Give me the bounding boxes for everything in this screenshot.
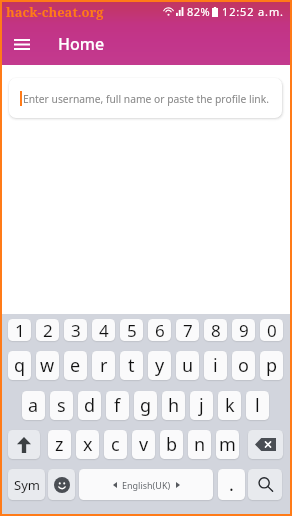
button[interactable]: 3 bbox=[64, 319, 87, 341]
button[interactable]: f bbox=[106, 391, 129, 420]
staticText: k bbox=[225, 393, 235, 418]
staticText: o bbox=[238, 353, 249, 378]
staticText: 8 bbox=[211, 319, 221, 341]
staticText: 9 bbox=[239, 319, 249, 341]
button[interactable]: . bbox=[218, 469, 245, 500]
staticText: 12:52 a.m. bbox=[222, 4, 284, 19]
staticText: Enter username, full name or paste the p… bbox=[23, 92, 269, 106]
staticText: r bbox=[100, 353, 108, 378]
button[interactable]: p bbox=[260, 351, 283, 380]
staticText: s bbox=[57, 393, 66, 418]
staticText: b bbox=[166, 432, 178, 457]
button[interactable]: u bbox=[176, 351, 199, 380]
staticText: hack-cheat.org bbox=[6, 3, 104, 21]
button[interactable]: t bbox=[120, 351, 143, 380]
staticText: q bbox=[14, 353, 26, 378]
staticText: Home bbox=[58, 33, 105, 55]
button[interactable]: o bbox=[232, 351, 255, 380]
staticText: m bbox=[219, 432, 236, 457]
button[interactable]: b bbox=[160, 430, 183, 459]
button[interactable]: m bbox=[216, 430, 239, 459]
button[interactable]: l bbox=[246, 391, 269, 420]
button[interactable]: 9 bbox=[232, 319, 255, 341]
button[interactable]: i bbox=[204, 351, 227, 380]
staticText: h bbox=[168, 393, 180, 418]
button[interactable]: 6 bbox=[148, 319, 171, 341]
staticText: l bbox=[255, 393, 260, 418]
staticText: 7 bbox=[183, 319, 193, 341]
button[interactable]: a bbox=[22, 391, 45, 420]
staticText: w bbox=[40, 353, 55, 378]
staticText: 3 bbox=[71, 319, 81, 341]
staticText: a bbox=[28, 393, 39, 418]
button[interactable]: 8 bbox=[204, 319, 227, 341]
staticText: g bbox=[140, 393, 152, 418]
button[interactable]: g bbox=[134, 391, 157, 420]
button[interactable]: Shift bbox=[8, 430, 40, 459]
button[interactable]: Sym bbox=[8, 469, 45, 500]
staticText: 4 bbox=[99, 319, 109, 341]
button[interactable]: c bbox=[104, 430, 127, 459]
staticText: 1 bbox=[15, 319, 25, 341]
staticText: f bbox=[114, 393, 121, 418]
staticText: n bbox=[194, 432, 206, 457]
button[interactable]: s bbox=[50, 391, 73, 420]
staticText: Sym bbox=[14, 476, 40, 494]
staticText: 6 bbox=[155, 319, 165, 341]
button[interactable]: 0 bbox=[260, 319, 283, 341]
staticText: v bbox=[139, 432, 149, 457]
staticText: x bbox=[83, 432, 93, 457]
button[interactable]: q bbox=[8, 351, 31, 380]
button[interactable]: Delete bbox=[248, 430, 283, 459]
button[interactable]: z bbox=[48, 430, 71, 459]
button[interactable]: 5 bbox=[120, 319, 143, 341]
button[interactable]: v bbox=[132, 430, 155, 459]
staticText: z bbox=[55, 432, 64, 457]
staticText: d bbox=[84, 393, 96, 418]
staticText: i bbox=[213, 353, 218, 378]
button[interactable]: e bbox=[64, 351, 87, 380]
staticText: . bbox=[229, 472, 234, 497]
button[interactable]: r bbox=[92, 351, 115, 380]
staticText: p bbox=[266, 353, 278, 378]
staticText: 2 bbox=[43, 319, 53, 341]
button[interactable]: Enter username, full name or paste the p… bbox=[9, 78, 282, 118]
button[interactable]: Emoji bbox=[48, 469, 75, 500]
button[interactable]: j bbox=[190, 391, 213, 420]
button[interactable]: 4 bbox=[92, 319, 115, 341]
button[interactable]: 2 bbox=[36, 319, 59, 341]
staticText: u bbox=[182, 353, 194, 378]
staticText: e bbox=[70, 353, 81, 378]
button[interactable]: x bbox=[76, 430, 99, 459]
staticText: 0 bbox=[267, 319, 277, 341]
staticText: c bbox=[111, 432, 120, 457]
staticText: j bbox=[199, 393, 204, 418]
button[interactable]: k bbox=[218, 391, 241, 420]
button[interactable]: Search bbox=[248, 469, 282, 500]
button[interactable]: Space bbox=[79, 469, 213, 500]
button[interactable]: n bbox=[188, 430, 211, 459]
button[interactable]: w bbox=[36, 351, 59, 380]
button[interactable]: d bbox=[78, 391, 101, 420]
staticText: 5 bbox=[127, 319, 137, 341]
button[interactable]: Open navigation menu bbox=[8, 30, 36, 58]
staticText: English(UK) bbox=[122, 479, 171, 491]
button[interactable]: h bbox=[162, 391, 185, 420]
button[interactable]: 1 bbox=[8, 319, 31, 341]
staticText: t bbox=[128, 353, 135, 378]
staticText: 82% bbox=[187, 4, 210, 19]
staticText: y bbox=[155, 353, 165, 378]
button[interactable]: y bbox=[148, 351, 171, 380]
button[interactable]: 7 bbox=[176, 319, 199, 341]
